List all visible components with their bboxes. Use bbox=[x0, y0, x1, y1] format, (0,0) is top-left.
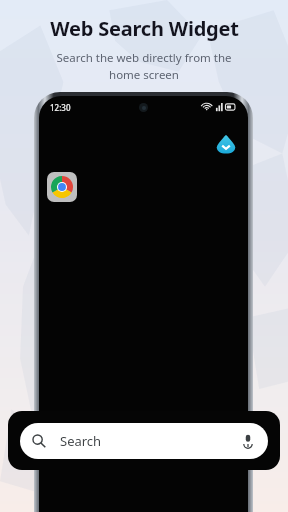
staticText: Search bbox=[60, 432, 102, 450]
staticText: 12:30 bbox=[50, 102, 71, 113]
button[interactable]: Search bbox=[8, 411, 280, 470]
button[interactable]: Chrome bbox=[47, 172, 77, 202]
button[interactable]: Search bbox=[20, 423, 268, 459]
staticText: Search the web directly from the home sc… bbox=[56, 50, 232, 82]
button[interactable]: Voice search bbox=[240, 433, 256, 449]
button[interactable]: Weather droplet bbox=[216, 134, 236, 154]
staticText: Web Search Widget bbox=[50, 15, 239, 42]
